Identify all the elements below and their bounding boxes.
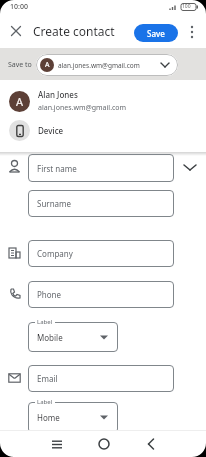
button[interactable]: Surname: [28, 190, 174, 217]
button[interactable]: A: [36, 54, 178, 76]
staticText: Label: [37, 398, 53, 406]
staticText: Alan Jones: [38, 89, 78, 100]
staticText: alan.jones.wm@gmail.com: [38, 103, 127, 113]
button[interactable]: Save: [134, 24, 178, 42]
button[interactable]: [185, 22, 199, 42]
staticText: 100: [182, 3, 191, 10]
staticText: Mobile: [37, 332, 63, 343]
staticText: Email: [37, 373, 58, 384]
button[interactable]: Device: [0, 118, 206, 142]
staticText: Home: [37, 412, 60, 423]
staticText: A: [45, 60, 50, 70]
button[interactable]: A: [0, 86, 206, 116]
staticText: Company: [37, 248, 73, 259]
staticText: Label: [37, 318, 53, 326]
button[interactable]: Phone: [28, 281, 174, 308]
staticText: Save: [147, 28, 165, 39]
button[interactable]: First name: [28, 154, 174, 182]
staticText: Surname: [37, 198, 72, 209]
button[interactable]: Mobile: [28, 322, 118, 352]
button[interactable]: [6, 21, 26, 41]
staticText: A: [16, 94, 24, 109]
staticText: Create contact: [33, 23, 115, 39]
staticText: Device: [38, 125, 64, 136]
button[interactable]: [180, 158, 200, 176]
button[interactable]: [141, 434, 161, 454]
button[interactable]: Company: [28, 240, 174, 267]
button[interactable]: [47, 434, 67, 454]
staticText: Save to: [8, 60, 32, 70]
staticText: alan.jones.wm@gmail.com: [58, 61, 140, 70]
button[interactable]: Email: [28, 365, 174, 392]
staticText: Phone: [37, 289, 62, 300]
button[interactable]: Home: [28, 402, 118, 433]
staticText: 10:00: [10, 2, 28, 12]
button[interactable]: [94, 434, 114, 454]
staticText: First name: [37, 163, 77, 174]
